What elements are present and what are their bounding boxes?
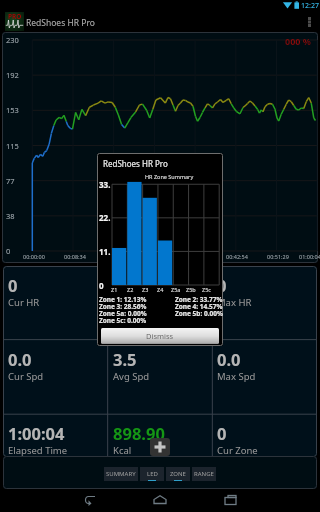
- staticText: RedShoes HR Pro: [26, 17, 95, 29]
- staticText: Avg HR: [113, 296, 146, 309]
- staticText: Cur Spd: [8, 370, 44, 383]
- button[interactable]: 0: [3, 266, 108, 340]
- button[interactable]: Dismiss: [101, 328, 219, 344]
- staticText: 230: [6, 35, 19, 45]
- staticText: 11.: [99, 246, 111, 257]
- button[interactable]: 3.5: [108, 340, 213, 415]
- staticText: Z5b: [186, 286, 196, 293]
- staticText: LED: [147, 470, 158, 478]
- staticText: 33.: [99, 179, 111, 190]
- staticText: 0.0: [8, 348, 32, 370]
- button[interactable]: Recents: [207, 489, 253, 512]
- staticText: Zone 5b: 0.00%: [175, 309, 223, 316]
- button[interactable]: 0: [108, 266, 213, 340]
- staticText: Z4: [157, 286, 164, 293]
- staticText: 12:27: [301, 1, 319, 11]
- button[interactable]: 0: [212, 266, 317, 340]
- staticText: Avg Spd: [113, 370, 150, 383]
- staticText: Zone 5a: 0.00%: [99, 309, 147, 316]
- staticText: 0: [8, 274, 18, 296]
- staticText: 00:25:43: [145, 253, 167, 260]
- staticText: 153: [6, 105, 19, 115]
- staticText: 0: [6, 246, 11, 256]
- staticText: 192: [6, 70, 19, 80]
- staticText: 38: [6, 211, 15, 221]
- staticText: Cur HR: [8, 296, 40, 309]
- staticText: 00:08:34: [64, 253, 86, 260]
- button[interactable]: 0.0: [212, 340, 317, 415]
- staticText: 898.90: [113, 422, 165, 444]
- staticText: Zone 2: 33.77%: [175, 295, 223, 302]
- staticText: 0: [217, 422, 227, 444]
- staticText: Zone 5c: 0.00%: [99, 316, 147, 323]
- button[interactable]: 0: [212, 414, 317, 457]
- staticText: 0: [113, 274, 123, 296]
- staticText: Z1: [111, 286, 118, 293]
- staticText: 000 %: [285, 35, 311, 47]
- staticText: 1:00:04: [8, 422, 65, 444]
- button[interactable]: Back: [67, 489, 113, 512]
- staticText: 00:17:09: [104, 253, 126, 260]
- staticText: RedShoes HR Pro: [103, 158, 168, 169]
- staticText: 77: [6, 176, 15, 186]
- staticText: Max HR: [217, 296, 252, 309]
- button[interactable]: Home: [137, 489, 183, 512]
- staticText: Cur Zone: [217, 444, 258, 457]
- staticText: Elapsed Time: [8, 444, 68, 457]
- staticText: 0: [99, 280, 104, 291]
- staticText: Max Spd: [217, 370, 256, 383]
- staticText: 3.5: [113, 348, 137, 370]
- staticText: Kcal: [113, 444, 132, 457]
- staticText: Z5a: [171, 286, 181, 293]
- staticText: SUMMARY: [106, 470, 136, 478]
- staticText: 0: [217, 274, 227, 296]
- button[interactable]: Zoom in: [150, 438, 170, 456]
- button[interactable]: 1:00:04: [3, 414, 108, 457]
- button[interactable]: ZONE: [166, 467, 190, 481]
- staticText: Zone 1: 12.13%: [99, 295, 147, 302]
- button[interactable]: LED: [140, 467, 164, 481]
- staticText: Zone 4: 14.57%: [175, 302, 223, 309]
- staticText: Dismiss: [146, 331, 174, 341]
- staticText: 00:42:54: [226, 253, 248, 260]
- button[interactable]: RANGE: [192, 467, 216, 481]
- staticText: ZONE: [170, 470, 186, 478]
- staticText: PRO: [8, 12, 22, 21]
- staticText: HR Zone Summary: [145, 173, 194, 180]
- staticText: RANGE: [194, 470, 214, 478]
- staticText: 00:34:18: [186, 253, 208, 260]
- staticText: 0.0: [217, 348, 241, 370]
- staticText: Z3: [142, 286, 149, 293]
- staticText: 00:00:00: [23, 253, 45, 260]
- staticText: Z2: [127, 286, 134, 293]
- staticText: Z5c: [202, 286, 211, 293]
- button[interactable]: 898.90: [108, 414, 213, 457]
- staticText: Zone 3: 28.56%: [99, 302, 147, 309]
- staticText: 115: [6, 141, 19, 151]
- staticText: 00:51:29: [267, 253, 289, 260]
- staticText: 22.: [99, 212, 111, 223]
- staticText: 01:00:04: [299, 253, 320, 260]
- button[interactable]: SUMMARY: [104, 467, 138, 481]
- button[interactable]: More options: [300, 11, 318, 32]
- button[interactable]: 0.0: [3, 340, 108, 415]
